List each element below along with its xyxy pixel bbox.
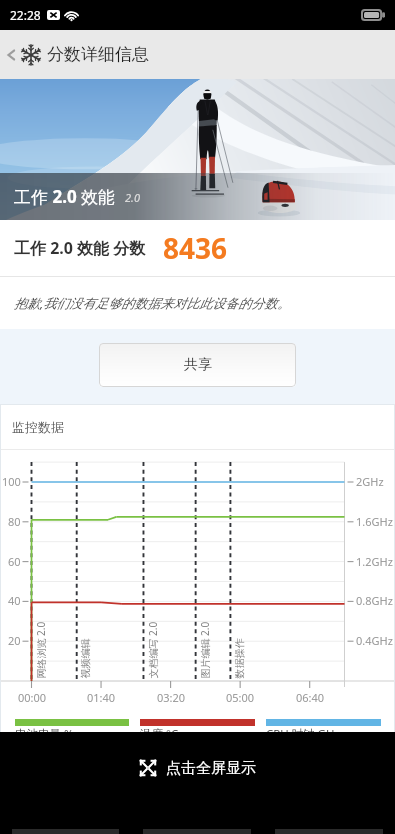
staticText: 05:00: [226, 690, 255, 705]
button[interactable]: [0, 804, 131, 834]
staticText: 视频编辑: [78, 638, 91, 678]
staticText: 工作 2.0 效能: [14, 185, 116, 208]
button[interactable]: 20: [0, 450, 395, 712]
staticText: 100: [2, 474, 21, 489]
staticText: 03:20: [157, 690, 186, 705]
staticText: 抱歉,我们没有足够的数据来对比此设备的分数。: [14, 294, 291, 312]
staticText: 温度 °C: [140, 726, 179, 742]
button[interactable]: [263, 804, 395, 834]
staticText: 1.2GHz: [356, 554, 393, 569]
staticText: 60: [8, 554, 21, 569]
other: Back: [4, 48, 18, 62]
staticText: 01:40: [87, 690, 116, 705]
staticText: 监控数据: [12, 419, 64, 435]
staticText: 00:00: [18, 690, 47, 705]
staticText: 1.6GHz: [356, 514, 393, 529]
staticText: 80: [8, 514, 21, 529]
button[interactable]: CPU 时钟 GHz: [266, 719, 381, 742]
staticText: 8436: [163, 229, 228, 267]
staticText: 0.8GHz: [356, 593, 393, 608]
staticText: 共享: [184, 356, 212, 374]
staticText: 2GHz: [356, 474, 384, 489]
staticText: 电池电量 %: [15, 726, 74, 742]
staticText: 数据操作: [232, 638, 245, 678]
staticText: 0.4GHz: [356, 633, 393, 648]
button[interactable]: [131, 804, 263, 834]
button[interactable]: 电池电量 %: [15, 719, 129, 742]
staticText: 文档编写 2.0: [145, 621, 158, 678]
staticText: CPU 时钟 GHz: [266, 726, 340, 742]
staticText: 06:40: [296, 690, 325, 705]
staticText: 22:28: [10, 7, 41, 23]
staticText: 工作 2.0 效能 分数: [14, 237, 146, 259]
staticText: 网络浏览 2.0: [33, 621, 46, 678]
staticText: 图片编辑 2.0: [197, 621, 210, 678]
button[interactable]: Back: [0, 30, 395, 79]
staticText: 40: [8, 593, 21, 608]
staticText: 分数详细信息: [47, 44, 149, 65]
button[interactable]: 点击全屏显示: [0, 732, 395, 804]
button[interactable]: 共享: [99, 343, 296, 387]
staticText: 2.0: [125, 190, 140, 205]
button[interactable]: 温度 °C: [140, 719, 255, 742]
staticText: 点击全屏显示: [166, 759, 256, 778]
staticText: 20: [8, 633, 21, 648]
